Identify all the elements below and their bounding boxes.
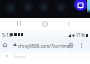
staticText: 5:18 (2, 32, 12, 39)
staticText: Search (14, 54, 26, 59)
button[interactable]: Back (3, 53, 9, 59)
button[interactable]: Pause (15, 19, 23, 27)
staticText: chrxy9589.com/?ico=tme (18, 43, 70, 49)
button[interactable]: Chat (74, 0, 87, 11)
button[interactable]: Home (1, 41, 9, 49)
button[interactable]: More options (77, 41, 86, 50)
button[interactable]: Stop (41, 20, 49, 28)
button[interactable]: Previous (65, 20, 73, 28)
staticText: 71% (76, 32, 85, 38)
button[interactable]: Switch tabs (66, 41, 75, 50)
